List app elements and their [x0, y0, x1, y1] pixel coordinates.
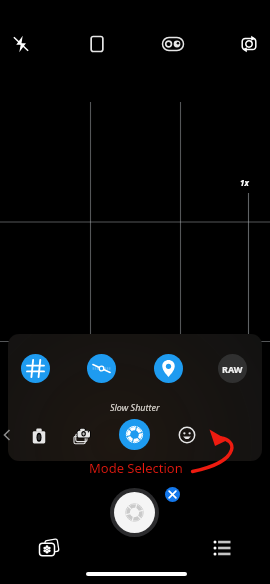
staticText: 1x: [240, 177, 249, 188]
button[interactable]: Grid: [21, 354, 50, 383]
button[interactable]: Aspect ratio: [82, 29, 112, 59]
button[interactable]: Level: [87, 354, 116, 383]
button[interactable]: Slow shutter mode: [119, 419, 150, 450]
button[interactable]: Photo mode: [28, 425, 50, 447]
button[interactable]: Settings list: [211, 537, 233, 559]
button[interactable]: Flash off: [6, 29, 36, 59]
button[interactable]: Burst mode: [70, 423, 94, 447]
button[interactable]: Shutter: [114, 492, 155, 533]
button[interactable]: Camera lens: [158, 29, 188, 59]
button[interactable]: Gallery: [35, 533, 63, 561]
button[interactable]: Previous mode: [0, 427, 15, 443]
button[interactable]: Portrait mode: [176, 424, 198, 446]
button[interactable]: Location: [154, 354, 183, 383]
button[interactable]: Switch camera: [234, 29, 264, 59]
staticText: Mode Selection: [89, 459, 183, 477]
button[interactable]: RAW: [218, 354, 247, 383]
button[interactable]: Close: [165, 487, 180, 502]
staticText: RAW: [222, 363, 243, 375]
staticText: Slow Shutter: [110, 401, 160, 413]
